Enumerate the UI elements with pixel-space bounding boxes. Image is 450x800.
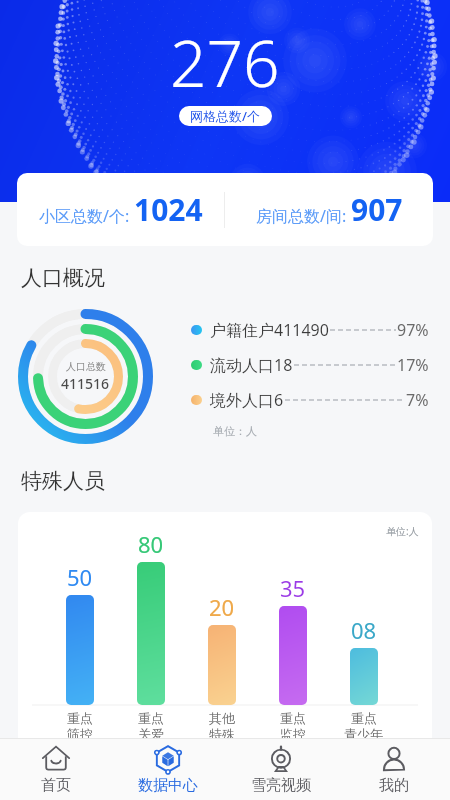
staticText: 数据中心 <box>138 776 198 795</box>
button[interactable]: 数据中心 <box>112 739 224 800</box>
staticText: 首页 <box>41 776 71 795</box>
staticText: 青少年 <box>344 726 383 742</box>
staticText: 监控 <box>280 726 306 742</box>
staticText: 流动人口18 <box>210 354 293 376</box>
staticText: 关爱 <box>138 726 164 742</box>
staticText: 单位:人 <box>386 524 419 538</box>
button[interactable]: 房间总数/间: <box>225 189 433 230</box>
staticText: 网格总数/个 <box>190 107 261 125</box>
staticText: 单位：人 <box>213 424 257 438</box>
staticText: 房间总数/间: <box>256 205 351 227</box>
staticText: 小区总数/个: <box>39 205 134 227</box>
staticText: 筛控 <box>67 726 93 742</box>
staticText: 20 <box>209 592 235 622</box>
staticText: 7% <box>406 389 429 411</box>
staticText: 907 <box>351 189 403 230</box>
staticText: 50 <box>67 562 93 592</box>
staticText: 雪亮视频 <box>251 776 311 795</box>
staticText: 重点 <box>67 710 93 726</box>
button[interactable]: 我的 <box>337 739 450 800</box>
button[interactable]: 首页 <box>0 739 112 800</box>
staticText: 重点 <box>138 710 164 726</box>
staticText: 人口总数 <box>66 360 106 373</box>
staticText: 我的 <box>379 776 409 795</box>
staticText: 境外人口6 <box>210 389 284 411</box>
staticText: 08 <box>351 615 377 645</box>
button[interactable]: 雪亮视频 <box>224 739 337 800</box>
staticText: 其他 <box>209 710 235 726</box>
staticText: 重点 <box>280 710 306 726</box>
staticText: 重点 <box>351 710 377 726</box>
staticText: 户籍住户411490 <box>210 319 329 341</box>
staticText: 80 <box>138 529 164 559</box>
staticText: 35 <box>280 573 306 603</box>
staticText: 276 <box>170 19 280 106</box>
staticText: 17% <box>397 354 429 376</box>
staticText: 人口概况 <box>21 265 105 291</box>
staticText: 411516 <box>61 374 110 393</box>
staticText: 1024 <box>134 189 203 230</box>
staticText: 97% <box>397 319 429 341</box>
staticText: 特殊 <box>209 726 235 742</box>
button[interactable]: 小区总数/个: <box>17 189 224 230</box>
staticText: 特殊人员 <box>21 468 105 494</box>
